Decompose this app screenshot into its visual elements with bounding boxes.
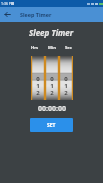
staticText: Sleep Timer [20,11,52,18]
staticText: Min [48,45,56,51]
staticText: 1:36 PM [1,1,15,6]
staticText: 0 [36,75,40,82]
staticText: 1 [64,82,68,89]
button[interactable]: 0 [59,56,73,100]
staticText: 1 [50,82,54,89]
button[interactable]: 0 [31,56,45,100]
staticText: 0 [50,75,54,82]
button[interactable]: Back [0,7,15,22]
staticText: Sec [65,45,72,51]
staticText: 00:00:00 [38,104,66,114]
staticText: 2 [64,89,68,96]
staticText: Sleep Timer [29,27,74,38]
staticText: 2 [50,89,54,96]
staticText: Hrs [31,45,39,51]
staticText: 1 [36,82,40,89]
staticText: 2 [36,89,40,96]
staticText: 0 [64,75,68,82]
button[interactable]: SET [30,118,73,132]
button[interactable]: 0 [45,56,59,100]
staticText: SET [47,122,56,129]
